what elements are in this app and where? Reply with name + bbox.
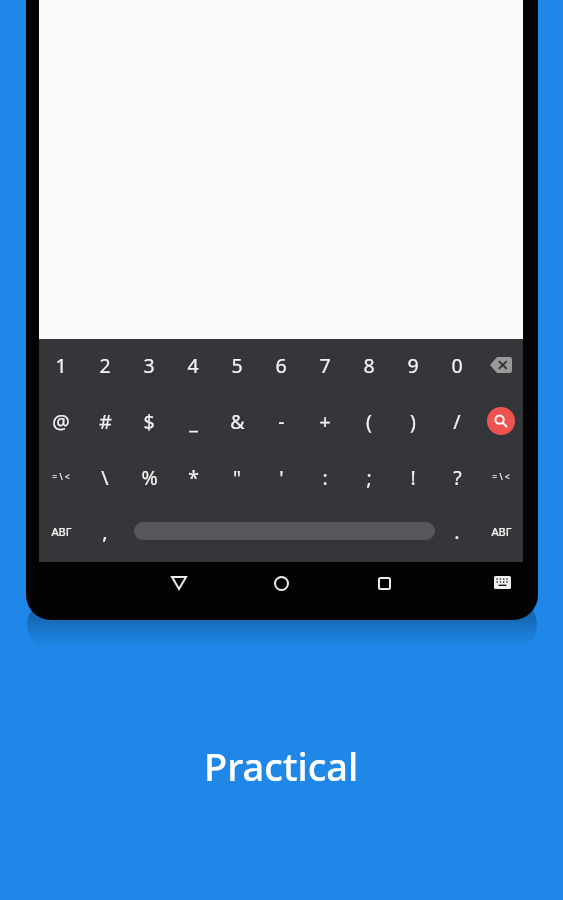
staticText: + <box>319 408 331 435</box>
button[interactable]: % <box>127 449 171 505</box>
staticText: 3 <box>143 352 155 379</box>
button[interactable] <box>479 337 523 393</box>
staticText: 1 <box>55 352 67 379</box>
staticText: АВГ <box>51 524 72 539</box>
button[interactable]: ? <box>435 449 479 505</box>
button[interactable]: 0 <box>435 337 479 393</box>
staticText: 6 <box>275 352 287 379</box>
button[interactable]: + <box>303 393 347 449</box>
staticText: . <box>454 518 460 545</box>
staticText: ? <box>453 464 462 491</box>
staticText: / <box>453 408 461 435</box>
staticText: ' <box>279 464 284 491</box>
button[interactable]: " <box>215 449 259 505</box>
button[interactable]: = \ < <box>39 449 83 505</box>
button[interactable]: 6 <box>259 337 303 393</box>
staticText: _ <box>189 408 198 435</box>
staticText: ( <box>366 408 372 435</box>
staticText: АВГ <box>491 524 512 539</box>
staticText: # <box>99 408 112 435</box>
button[interactable]: : <box>303 449 347 505</box>
staticText: 8 <box>363 352 375 379</box>
staticText: ! <box>410 464 416 491</box>
button[interactable]: - <box>259 393 303 449</box>
button[interactable]: 4 <box>171 337 215 393</box>
button[interactable] <box>487 407 515 435</box>
staticText: : <box>322 464 328 491</box>
button[interactable] <box>261 563 301 603</box>
button[interactable]: / <box>435 393 479 449</box>
button[interactable]: ; <box>347 449 391 505</box>
button[interactable]: & <box>215 393 259 449</box>
staticText: Practical <box>204 740 359 792</box>
button[interactable]: АВГ <box>479 503 523 559</box>
staticText: 7 <box>319 352 331 379</box>
staticText: " <box>233 464 241 491</box>
button[interactable] <box>486 568 518 596</box>
button[interactable]: 7 <box>303 337 347 393</box>
button[interactable]: , <box>83 503 127 559</box>
button[interactable]: \ <box>83 449 127 505</box>
button[interactable]: # <box>83 393 127 449</box>
button[interactable]: . <box>435 503 479 559</box>
staticText: $ <box>143 408 155 435</box>
staticText: , <box>102 518 108 545</box>
button[interactable] <box>134 522 435 540</box>
staticText: @ <box>52 408 70 435</box>
staticText: & <box>230 408 245 435</box>
button[interactable]: ) <box>391 393 435 449</box>
staticText: \ <box>101 464 109 491</box>
staticText: % <box>141 464 158 491</box>
button[interactable] <box>159 563 199 603</box>
button[interactable]: 9 <box>391 337 435 393</box>
button[interactable]: АВГ <box>39 503 83 559</box>
staticText: 5 <box>231 352 243 379</box>
button[interactable]: @ <box>39 393 83 449</box>
staticText: = \ < <box>52 471 70 483</box>
button[interactable]: 3 <box>127 337 171 393</box>
staticText: 9 <box>407 352 419 379</box>
staticText: = \ < <box>492 471 510 483</box>
staticText: 0 <box>451 352 463 379</box>
button[interactable]: $ <box>127 393 171 449</box>
button[interactable]: 1 <box>39 337 83 393</box>
staticText: ; <box>366 464 372 491</box>
button[interactable]: ( <box>347 393 391 449</box>
button[interactable]: ! <box>391 449 435 505</box>
staticText: ) <box>410 408 416 435</box>
button[interactable] <box>364 563 404 603</box>
staticText: * <box>188 464 199 491</box>
button[interactable]: 8 <box>347 337 391 393</box>
button[interactable]: = \ < <box>479 449 523 505</box>
button[interactable]: * <box>171 449 215 505</box>
staticText: 4 <box>187 352 199 379</box>
staticText: - <box>278 408 285 435</box>
button[interactable]: 2 <box>83 337 127 393</box>
staticText: 2 <box>99 352 111 379</box>
button[interactable]: ' <box>259 449 303 505</box>
button[interactable]: _ <box>171 393 215 449</box>
button[interactable]: 5 <box>215 337 259 393</box>
